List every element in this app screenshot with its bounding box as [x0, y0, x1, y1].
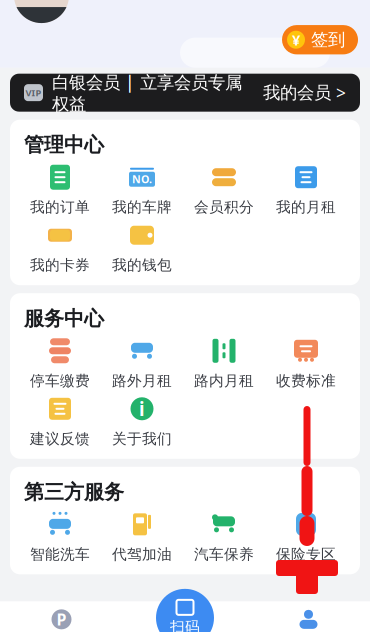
staticText: >: [336, 81, 346, 104]
staticText: 保险专区: [276, 545, 336, 563]
staticText: ¥: [292, 30, 300, 49]
staticText: 收费标准: [276, 372, 336, 390]
button[interactable]: 扫码: [156, 587, 214, 632]
button[interactable]: 我的月租: [265, 161, 347, 217]
button[interactable]: ¥: [282, 25, 358, 54]
staticText: i: [139, 396, 145, 421]
button[interactable]: 智能洗车: [19, 508, 101, 564]
staticText: 管理中心: [24, 133, 104, 157]
staticText: 我的会员: [263, 82, 331, 103]
staticText: 我的订单: [30, 198, 90, 216]
staticText: 代驾加油: [112, 545, 172, 563]
button[interactable]: NO.: [101, 161, 183, 217]
button[interactable]: 路内月租: [183, 335, 265, 391]
button[interactable]: P: [0, 604, 123, 632]
staticText: 服务中心: [24, 306, 104, 331]
button[interactable]: 我的订单: [19, 161, 101, 217]
staticText: 第三方服务: [24, 480, 124, 504]
staticText: 我的车牌: [112, 198, 172, 216]
staticText: 关于我们: [112, 430, 172, 448]
staticText: 扫码: [170, 618, 200, 632]
staticText: P: [56, 609, 66, 630]
staticText: 签到: [311, 29, 345, 50]
button[interactable]: 我的卡券: [19, 219, 101, 275]
button[interactable]: 代驾加油: [101, 508, 183, 564]
button[interactable]: 会员积分: [183, 161, 265, 217]
button[interactable]: i: [101, 393, 183, 449]
button[interactable]: 收费标准: [265, 335, 347, 391]
staticText: 白银会员 | 立享会员专属权益: [52, 70, 242, 115]
staticText: 路外月租: [112, 372, 172, 390]
button[interactable]: 路外月租: [101, 335, 183, 391]
button[interactable]: VIP: [0, 74, 370, 112]
staticText: 我的钱包: [112, 256, 172, 274]
staticText: 路内月租: [194, 372, 254, 390]
staticText: 我的卡券: [30, 256, 90, 274]
staticText: NO.: [132, 172, 152, 186]
button[interactable]: 服务大厅: [247, 604, 370, 632]
button[interactable]: 汽车保养: [183, 508, 265, 564]
staticText: 智能洗车: [30, 545, 90, 563]
button[interactable]: 我的钱包: [101, 219, 183, 275]
button[interactable]: 停车缴费: [19, 335, 101, 391]
staticText: VIP: [25, 86, 41, 99]
button[interactable]: 建议反馈: [19, 393, 101, 449]
staticText: 汽车保养: [194, 545, 254, 563]
button[interactable]: 保险专区: [265, 508, 347, 564]
staticText: 停车缴费: [30, 372, 90, 390]
staticText: 建议反馈: [30, 430, 90, 448]
staticText: 会员积分: [194, 198, 254, 216]
staticText: 我的月租: [276, 198, 336, 216]
